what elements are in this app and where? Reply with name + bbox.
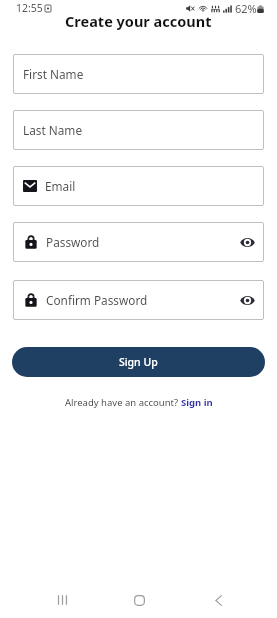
button[interactable]: Password: [13, 222, 264, 262]
button[interactable]: Last Name: [13, 110, 264, 150]
staticText: Password: [46, 234, 100, 250]
button[interactable]: Sign Up: [12, 347, 265, 377]
button[interactable]: First Name: [13, 54, 264, 94]
button[interactable]: Email: [13, 166, 264, 206]
staticText: Sign in: [181, 396, 213, 409]
button[interactable]: Home: [121, 582, 157, 618]
button[interactable]: Sign in: [181, 396, 213, 409]
button[interactable]: Show password: [238, 233, 256, 251]
staticText: Sign Up: [119, 355, 158, 369]
button[interactable]: Back: [200, 582, 236, 618]
staticText: Create your account: [65, 11, 212, 31]
button[interactable]: Confirm Password: [13, 280, 264, 320]
staticText: Last Name: [23, 122, 83, 138]
staticText: First Name: [23, 66, 84, 82]
button[interactable]: Show password: [238, 291, 256, 309]
staticText: 12:55: [16, 1, 43, 15]
staticText: Already have an account?: [65, 396, 181, 409]
staticText: Email: [45, 178, 76, 194]
staticText: 62%: [235, 1, 257, 16]
button[interactable]: Recent apps: [44, 582, 80, 618]
staticText: Confirm Password: [46, 292, 148, 308]
